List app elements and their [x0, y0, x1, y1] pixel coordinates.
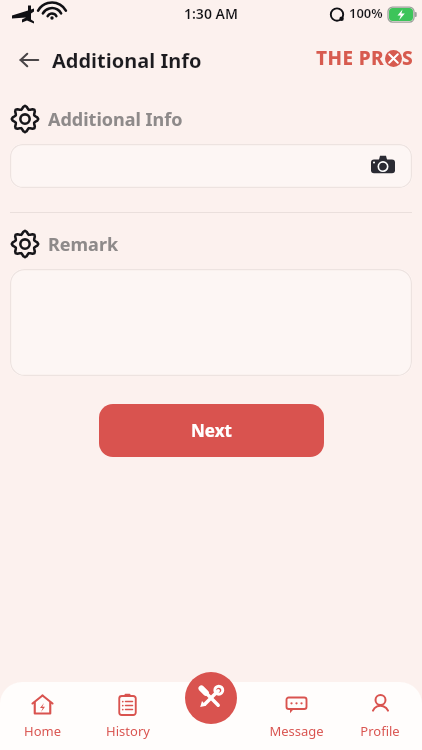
staticText: Home [24, 722, 61, 740]
button[interactable]: Take photo [366, 149, 400, 183]
staticText: Remark [48, 232, 119, 257]
staticText: Additional Info [48, 107, 183, 132]
staticText: THE PR [316, 45, 385, 71]
staticText: 1:30 AM [184, 4, 238, 23]
staticText: Message [269, 722, 324, 740]
button[interactable]: History [85, 692, 170, 740]
staticText: Additional Info [52, 47, 202, 74]
staticText: History [106, 722, 150, 740]
staticText: Next [191, 419, 232, 442]
staticText: 100% [349, 4, 383, 22]
button[interactable]: Message [254, 692, 338, 740]
button[interactable]: Services [185, 672, 237, 724]
button[interactable]: Next [99, 404, 324, 457]
button[interactable]: Profile [338, 692, 422, 740]
button[interactable] [10, 269, 412, 376]
button[interactable]: Home [0, 692, 85, 740]
staticText: S [402, 45, 414, 71]
staticText: Profile [360, 722, 400, 740]
button[interactable]: Take photo [10, 144, 412, 188]
button[interactable]: Back [12, 43, 46, 77]
